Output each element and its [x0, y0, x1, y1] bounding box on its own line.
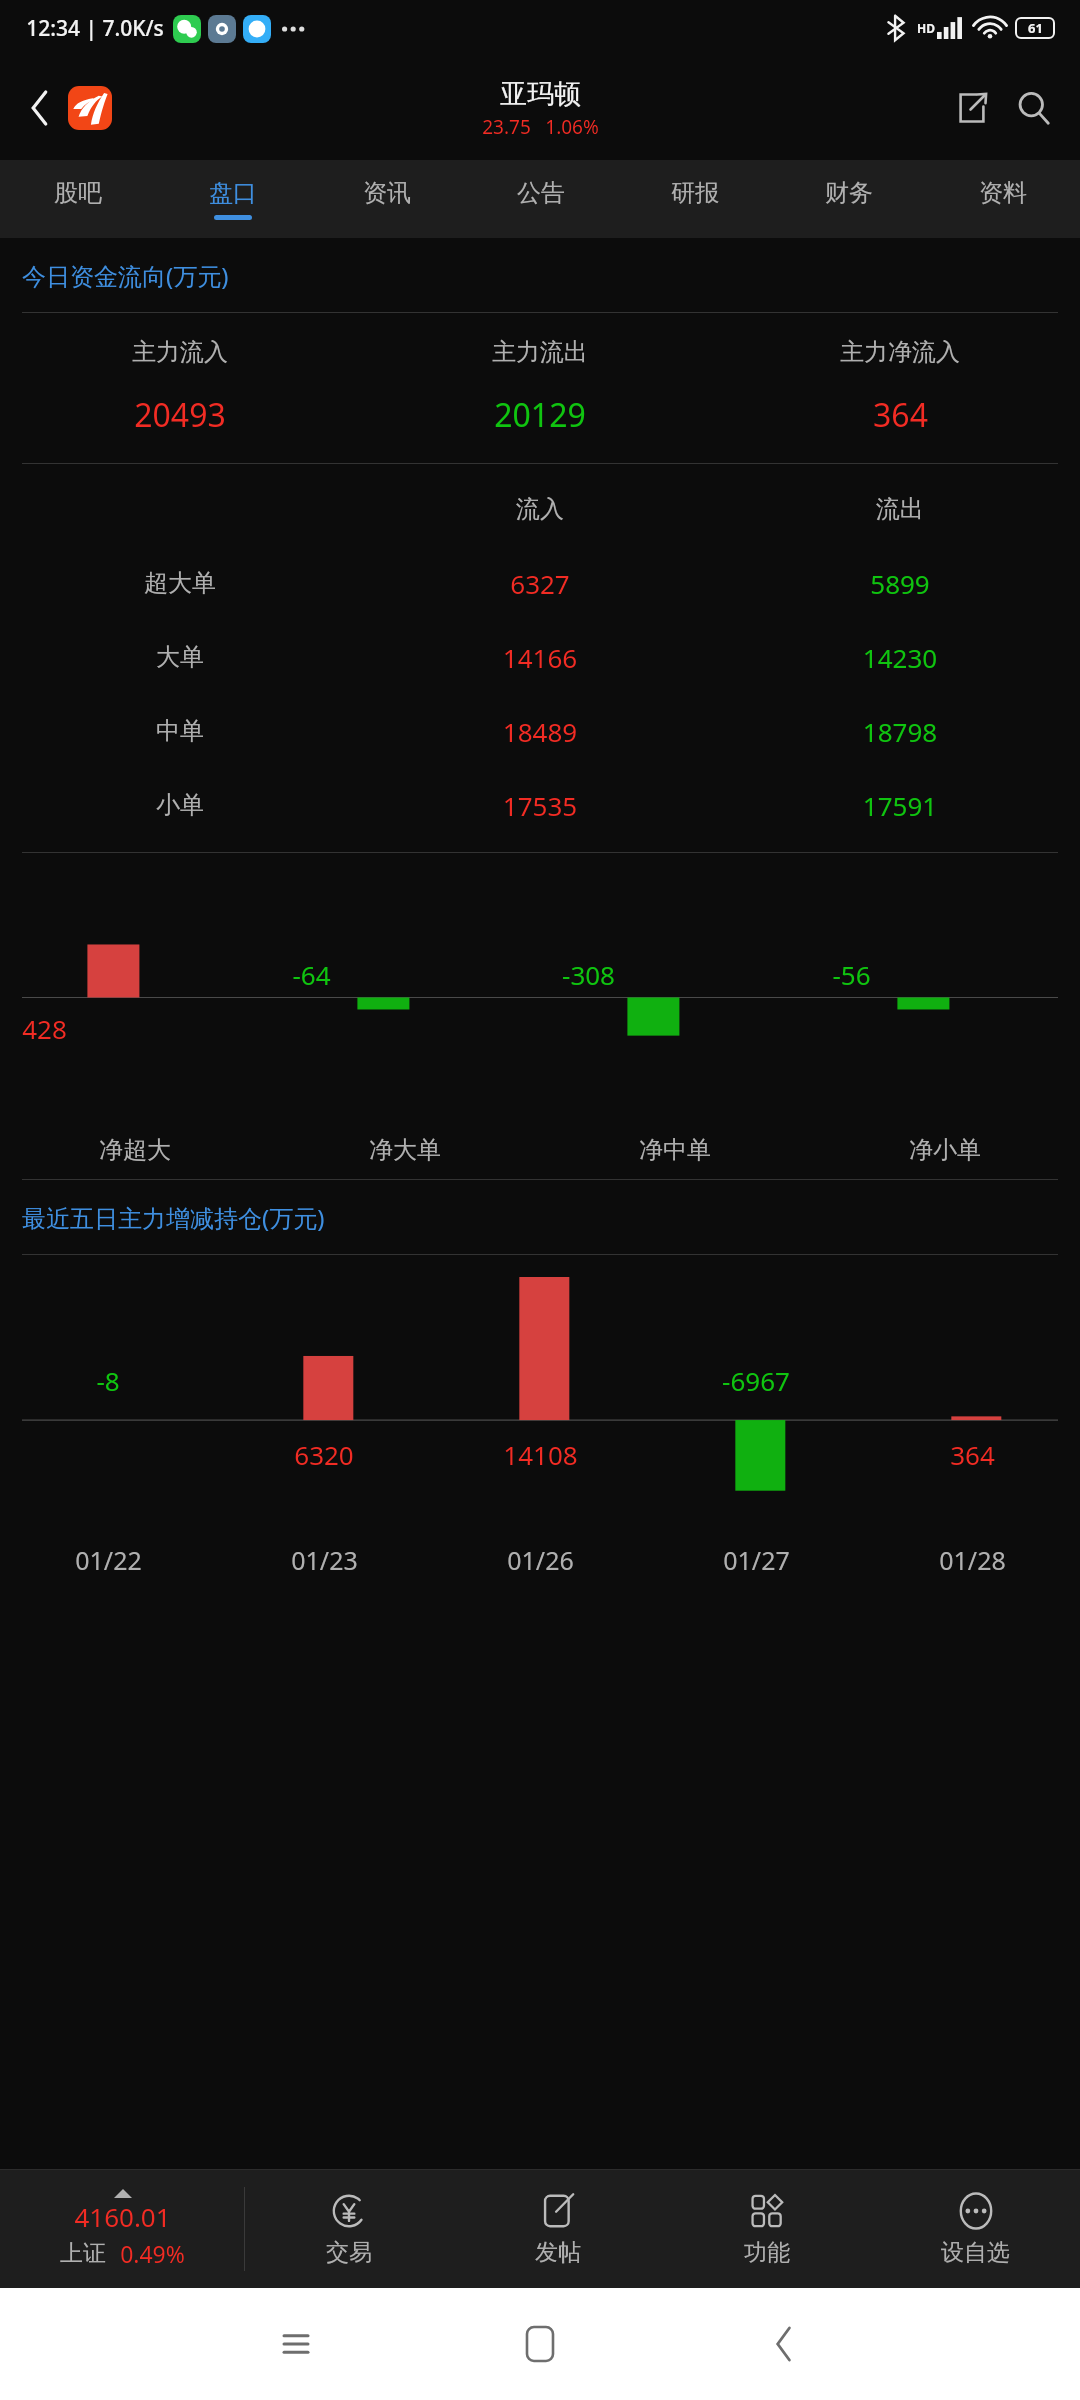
- staticText: 18489: [360, 714, 720, 749]
- staticText: -56: [832, 957, 871, 992]
- staticText: -8: [96, 1363, 120, 1398]
- staticText: 研报: [671, 178, 719, 208]
- staticText: 14108: [503, 1437, 578, 1472]
- staticText: 功能: [744, 2238, 790, 2267]
- staticText: 23.75: [482, 114, 531, 140]
- staticText: HD: [917, 20, 935, 36]
- staticText: 1.06%: [545, 114, 599, 140]
- button[interactable]: 研报: [618, 160, 772, 238]
- staticText: 股吧: [54, 178, 102, 208]
- button[interactable]: Share: [942, 78, 1002, 138]
- staticText: 小单: [0, 790, 360, 820]
- staticText: 今日资金流向(万元): [22, 259, 229, 292]
- staticText: -308: [562, 957, 615, 992]
- staticText: 0.49%: [120, 2238, 185, 2269]
- button[interactable]: Back: [12, 80, 68, 136]
- button[interactable]: Home: [418, 2288, 662, 2400]
- button[interactable]: 资料: [926, 160, 1080, 238]
- staticText: 428: [22, 1011, 67, 1046]
- staticText: 超大单: [0, 568, 360, 598]
- button[interactable]: Search: [1002, 76, 1066, 140]
- staticText: 财务: [825, 178, 873, 208]
- staticText: 01/26: [507, 1543, 574, 1577]
- staticText: 01/22: [75, 1543, 142, 1577]
- button[interactable]: 中单: [0, 694, 1080, 768]
- staticText: 净小单: [909, 1135, 981, 1165]
- staticText: 资讯: [363, 178, 411, 208]
- staticText: 61: [1028, 19, 1043, 37]
- staticText: 流出: [720, 494, 1080, 524]
- button[interactable]: 发帖: [453, 2170, 662, 2288]
- staticText: 公告: [517, 178, 565, 208]
- staticText: 主力流入: [132, 337, 228, 367]
- staticText: 交易: [326, 2238, 372, 2267]
- button[interactable]: 小单: [0, 768, 1080, 842]
- button[interactable]: 交易: [245, 2170, 453, 2288]
- staticText: 14230: [720, 640, 1080, 675]
- staticText: 净大单: [369, 1135, 441, 1165]
- staticText: 14166: [360, 640, 720, 675]
- staticText: 364: [873, 393, 928, 437]
- staticText: 20129: [494, 393, 586, 437]
- staticText: 主力流出: [492, 337, 588, 367]
- staticText: 364: [950, 1437, 995, 1472]
- button[interactable]: 大单: [0, 620, 1080, 694]
- staticText: 4160.01: [74, 2199, 171, 2234]
- staticText: 5899: [720, 566, 1080, 601]
- button[interactable]: 4160.01: [0, 2170, 244, 2288]
- staticText: 最近五日主力增减持仓(万元): [22, 1201, 325, 1234]
- staticText: 17535: [360, 788, 720, 823]
- button[interactable]: 公告: [464, 160, 618, 238]
- button[interactable]: Back: [662, 2288, 906, 2400]
- staticText: 01/27: [723, 1543, 790, 1577]
- staticText: 盘口: [209, 178, 257, 208]
- button[interactable]: 功能: [662, 2170, 871, 2288]
- staticText: 01/23: [291, 1543, 358, 1577]
- button[interactable]: Recents: [174, 2288, 418, 2400]
- staticText: 净超大: [99, 1135, 171, 1165]
- staticText: 流入: [360, 494, 720, 524]
- staticText: 20493: [134, 393, 226, 437]
- button[interactable]: App logo: [68, 86, 112, 130]
- staticText: 资料: [979, 178, 1027, 208]
- button[interactable]: 设自选: [871, 2170, 1080, 2288]
- button[interactable]: 资讯: [310, 160, 464, 238]
- staticText: -6967: [722, 1363, 790, 1398]
- button[interactable]: 财务: [772, 160, 926, 238]
- staticText: 6327: [360, 566, 720, 601]
- button[interactable]: 股吧: [0, 160, 155, 238]
- staticText: 主力净流入: [840, 337, 960, 367]
- staticText: 净中单: [639, 1135, 711, 1165]
- button[interactable]: 超大单: [0, 546, 1080, 620]
- staticText: 01/28: [939, 1543, 1006, 1577]
- staticText: 17591: [720, 788, 1080, 823]
- staticText: 设自选: [941, 2238, 1010, 2267]
- staticText: 上证: [60, 2239, 106, 2268]
- staticText: 亚玛顿: [500, 77, 581, 111]
- staticText: -64: [292, 957, 331, 992]
- staticText: 6320: [294, 1437, 354, 1472]
- button[interactable]: 盘口: [155, 160, 310, 238]
- staticText: 大单: [0, 642, 360, 672]
- staticText: 12:34 | 7.0K/s: [26, 14, 164, 43]
- staticText: 18798: [720, 714, 1080, 749]
- staticText: 中单: [0, 716, 360, 746]
- staticText: 发帖: [535, 2238, 581, 2267]
